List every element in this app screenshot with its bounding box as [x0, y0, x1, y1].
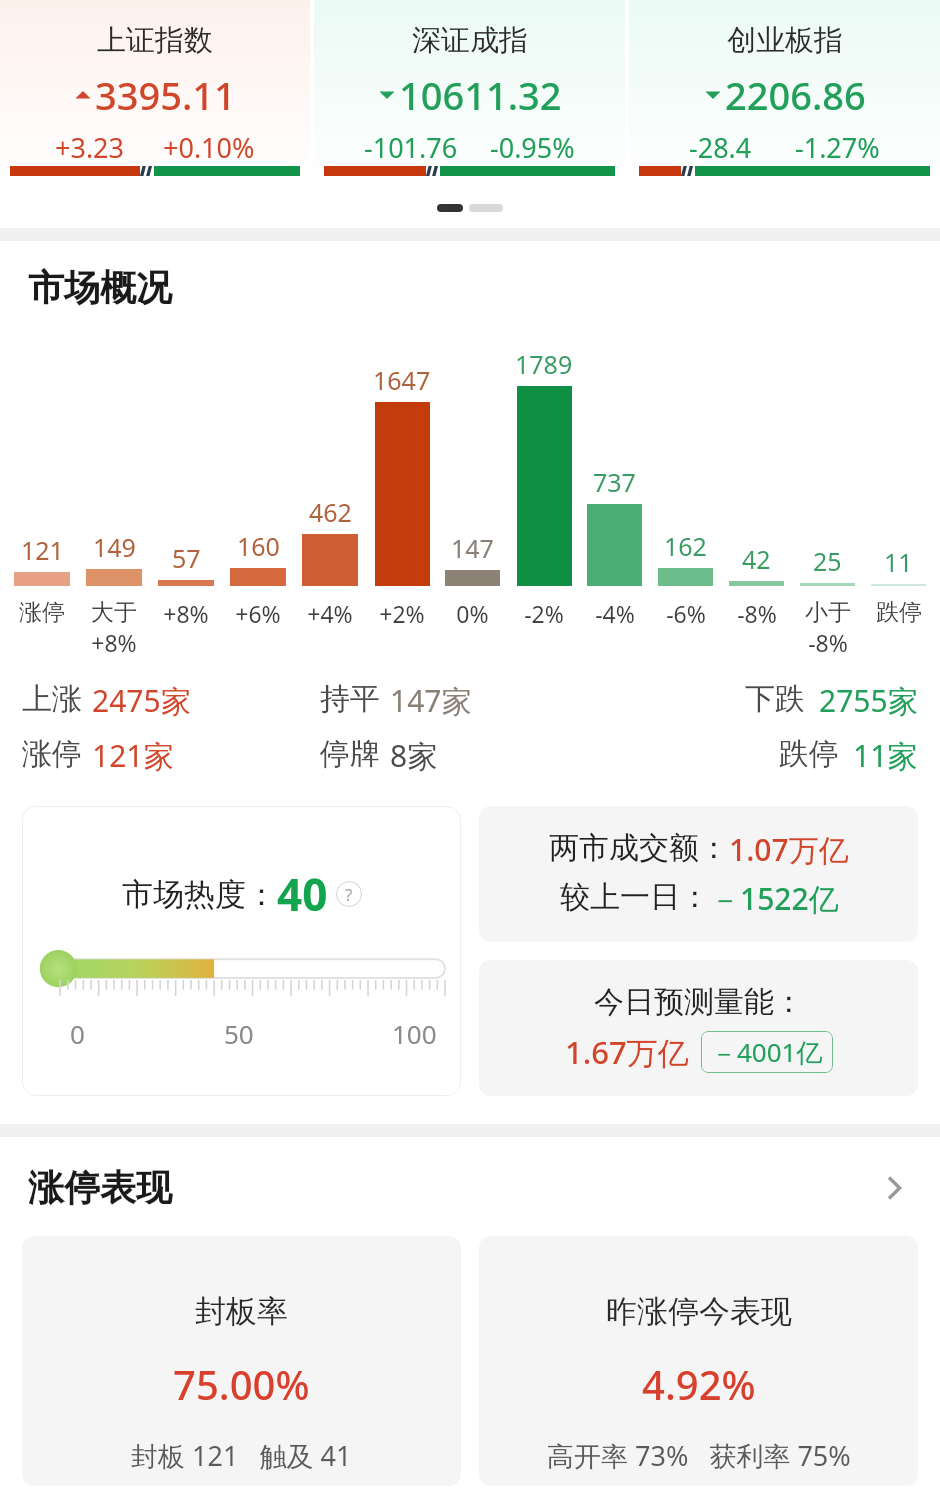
staticText: 昨涨停今表现 [606, 1292, 792, 1331]
button[interactable]: 上证指数 [0, 0, 310, 188]
staticText: +6% [235, 598, 281, 629]
staticText: -6% [666, 598, 706, 629]
other: 更多 [876, 1170, 912, 1206]
staticText: －4001亿 [711, 1034, 823, 1070]
staticText: -8% [737, 598, 777, 629]
staticText: +8% [163, 598, 209, 629]
button[interactable]: 市场热度： [22, 806, 461, 1096]
staticText: 57 [172, 541, 201, 575]
button[interactable]: 涨停表现 [28, 1165, 912, 1210]
staticText: 2755家 [819, 680, 918, 721]
staticText: +4% [307, 598, 353, 629]
staticText: 涨停 [22, 735, 82, 773]
staticText: 封板 121 触及 41 [131, 1437, 352, 1474]
staticText: 上涨 [22, 680, 82, 718]
button[interactable]: 今日预测量能： [479, 960, 918, 1096]
staticText: 小于 [805, 598, 851, 627]
staticText: +8% [91, 627, 137, 658]
staticText: 涨停表现 [28, 1165, 172, 1210]
staticText: 上证指数 [97, 22, 213, 59]
staticText: 10611.32 [399, 69, 562, 121]
staticText: 今日预测量能： [594, 983, 804, 1021]
staticText: 跌停 [876, 598, 922, 627]
button[interactable]: 深证成指 [314, 0, 625, 188]
staticText: 147 [451, 531, 494, 565]
button[interactable]: 两市成交额： [479, 806, 918, 942]
staticText: 停牌 [320, 735, 380, 773]
staticText: -4% [595, 598, 635, 629]
staticText: 下跌 [745, 680, 805, 718]
staticText: 大于 [91, 598, 137, 627]
staticText: 3395.11 [95, 69, 236, 121]
staticText: 11家 [853, 735, 918, 776]
staticText: 1.67万亿 [565, 1031, 689, 1073]
staticText: 高开率 73% 获利率 75% [547, 1437, 851, 1474]
staticText: 160 [237, 529, 280, 563]
staticText: -0.95% [490, 129, 575, 166]
staticText: 封板率 [195, 1292, 288, 1331]
staticText: 持平 [320, 680, 380, 718]
staticText: 4.92% [642, 1357, 756, 1411]
button[interactable]: 昨涨停今表现 [479, 1236, 918, 1486]
staticText: 0% [456, 598, 489, 629]
staticText: ? [345, 883, 353, 906]
staticText: 1789 [515, 347, 573, 381]
button[interactable]: 创业板指 [629, 0, 940, 188]
staticText: 11 [884, 545, 913, 579]
staticText: 121 [21, 533, 64, 567]
staticText: +3.23 [55, 129, 125, 166]
staticText: +2% [379, 598, 425, 629]
staticText: 50 [224, 1016, 254, 1051]
staticText: 462 [309, 495, 352, 529]
staticText: 121家 [92, 735, 174, 776]
staticText: -28.4 [689, 129, 752, 166]
staticText: 25 [813, 544, 842, 578]
button[interactable]: 封板率 [22, 1236, 461, 1486]
staticText: 创业板指 [727, 22, 843, 59]
staticText: 2206.86 [725, 69, 866, 121]
staticText: 737 [593, 465, 636, 499]
staticText: 市场概况 [28, 265, 172, 310]
staticText: 162 [664, 529, 707, 563]
staticText: 100 [392, 1016, 437, 1051]
staticText: -1.27% [795, 129, 880, 166]
staticText: 较上一日： [560, 878, 710, 916]
button[interactable]: 说明 [336, 881, 362, 907]
staticText: 149 [93, 530, 136, 564]
staticText: 1647 [373, 363, 431, 397]
staticText: -2% [524, 598, 564, 629]
staticText: 市场热度： [122, 875, 277, 914]
staticText: －1522亿 [710, 878, 839, 919]
staticText: 147家 [390, 680, 472, 721]
staticText: 0 [70, 1016, 85, 1051]
staticText: 75.00% [173, 1357, 310, 1411]
staticText: 8家 [390, 735, 438, 776]
staticText: 2475家 [92, 680, 191, 721]
staticText: -101.76 [364, 129, 458, 166]
staticText: 涨停 [19, 598, 65, 627]
staticText: 深证成指 [412, 22, 528, 59]
staticText: 1.07万亿 [729, 829, 849, 870]
staticText: -8% [808, 627, 848, 658]
staticText: 40 [277, 864, 328, 924]
staticText: 42 [742, 542, 771, 576]
staticText: +0.10% [163, 129, 255, 166]
staticText: 两市成交额： [549, 829, 729, 867]
staticText: 跌停 [779, 735, 839, 773]
